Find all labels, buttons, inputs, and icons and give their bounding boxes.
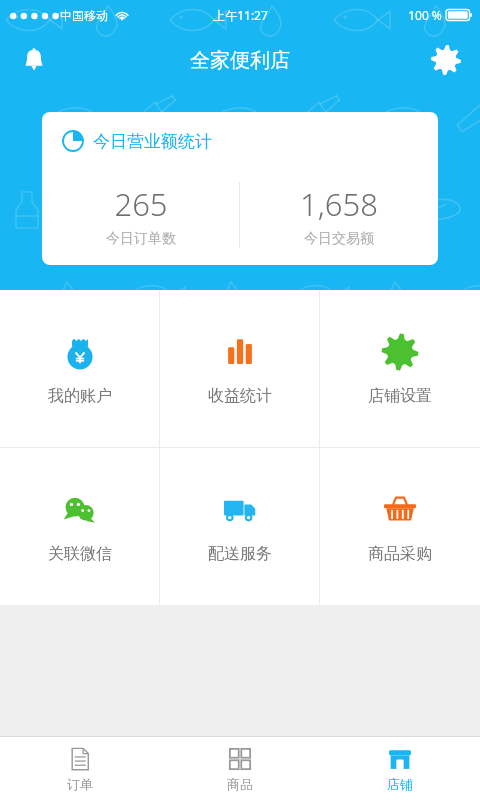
staticText: 上午11:27	[213, 7, 268, 23]
staticText: 今日交易额	[304, 230, 374, 248]
button[interactable]: 店铺	[320, 737, 480, 800]
staticText: 1,658	[300, 183, 378, 225]
button[interactable]: Notifications	[8, 34, 60, 86]
staticText: 商品	[227, 776, 253, 792]
staticText: 店铺设置	[368, 386, 432, 406]
staticText: 中国移动	[60, 8, 108, 23]
button[interactable]: 今日营业额统计	[42, 112, 438, 265]
staticText: 265	[114, 183, 168, 225]
staticText: 关联微信	[48, 544, 112, 564]
staticText: 店铺	[387, 776, 413, 792]
staticText: 我的账户	[48, 386, 112, 406]
button[interactable]: 我的账户	[0, 290, 160, 447]
button[interactable]: 关联微信	[0, 448, 160, 605]
staticText: 收益统计	[208, 386, 272, 406]
button[interactable]: 配送服务	[160, 448, 320, 605]
button[interactable]: 商品	[160, 737, 320, 800]
button[interactable]: 订单	[0, 737, 160, 800]
staticText: 配送服务	[208, 544, 272, 564]
staticText: 今日营业额统计	[93, 131, 212, 152]
button[interactable]: 商品采购	[320, 448, 480, 605]
staticText: 全家便利店	[190, 48, 290, 73]
button[interactable]: Settings	[420, 34, 472, 86]
staticText: 今日订单数	[106, 230, 176, 248]
button[interactable]: 收益统计	[160, 290, 320, 447]
button[interactable]: 店铺设置	[320, 290, 480, 447]
staticText: 100 %	[408, 7, 442, 23]
staticText: 商品采购	[368, 544, 432, 564]
staticText: 订单	[67, 776, 93, 792]
